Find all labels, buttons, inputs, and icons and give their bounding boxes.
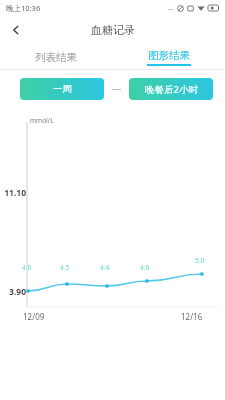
button[interactable]: 晚餐后2小时 — [129, 78, 213, 100]
staticText: 12/09 — [23, 311, 45, 322]
staticText: 图形结果 — [148, 49, 190, 62]
staticText: mmol/L — [30, 116, 54, 125]
staticText: 4.5 — [60, 263, 70, 272]
staticText: 4.0 — [22, 263, 32, 272]
button[interactable]: Back — [4, 18, 28, 42]
button[interactable]: 列表结果 — [0, 44, 112, 70]
staticText: ... — [168, 3, 174, 13]
staticText: 5.0 — [195, 256, 205, 265]
staticText: 4.6 — [140, 263, 150, 272]
staticText: 12/16 — [181, 311, 203, 322]
staticText: 4.4 — [100, 263, 110, 272]
staticText: 血糖记录 — [91, 23, 135, 37]
staticText: 列表结果 — [35, 51, 77, 64]
staticText: 晚餐后2小时 — [145, 83, 198, 96]
staticText: 3.90 — [2, 286, 26, 298]
staticText: 一周 — [53, 83, 72, 95]
staticText: 晚上10:36 — [6, 3, 41, 13]
button[interactable]: 一周 — [20, 78, 104, 100]
button[interactable]: 图形结果 — [112, 44, 225, 70]
staticText: 11.10 — [4, 187, 26, 199]
